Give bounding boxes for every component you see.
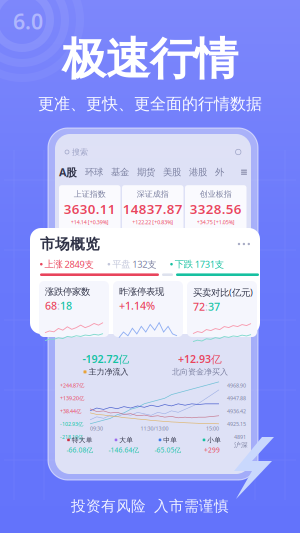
staticText: 11:30/13:00 (140, 425, 168, 432)
staticText: 创业板指 (200, 189, 232, 199)
staticText: +14.14 [+0.39%] (71, 219, 109, 226)
staticText: -218.10亿 (60, 433, 83, 440)
staticText: 37 (208, 299, 220, 314)
staticText: -65.05亿 (154, 445, 181, 454)
staticText: 深证成指 (137, 189, 169, 199)
staticText: 6.0 (13, 7, 43, 35)
staticText: 市场概览 (40, 235, 100, 253)
staticText: 4925.15 (227, 420, 246, 428)
staticText: 环球 (85, 166, 103, 178)
staticText: 14837.87 (123, 200, 183, 218)
staticText: 大单 (119, 436, 133, 444)
staticText: 1731支 (195, 258, 224, 270)
staticText: 涨跌停家数 (45, 286, 90, 297)
staticText: 4936.42 (227, 408, 246, 415)
staticText: 基金 (111, 166, 129, 178)
staticText: 68 (45, 298, 57, 313)
staticText: 09:30 (90, 425, 103, 432)
staticText: 期货 (137, 166, 155, 178)
staticText: +299 (204, 445, 220, 454)
staticText: 小单 (207, 436, 221, 444)
staticText: -66.08亿 (66, 445, 93, 454)
staticText: 2849支 (65, 258, 94, 270)
staticText: +34.75 [+1.05%] (197, 219, 235, 226)
staticText: 4947.88 (227, 395, 246, 402)
staticText: 72 (193, 299, 205, 314)
staticText: 买卖对比(亿元) (193, 286, 253, 298)
staticText: -146.64亿 (108, 445, 139, 454)
staticText: 极速行情 (62, 32, 238, 86)
staticText: +139.20亿 (60, 395, 84, 402)
staticText: +1.14% (119, 298, 155, 313)
staticText: 搜索 (72, 147, 88, 157)
staticText: -102.93亿 (60, 420, 83, 428)
staticText: 下跌 (175, 258, 193, 270)
staticText: : (57, 298, 60, 313)
staticText: 18 (60, 298, 72, 313)
staticText: 港股 (189, 166, 207, 178)
staticText: 外 (215, 166, 224, 178)
staticText: 昨涨停表现 (119, 286, 164, 297)
staticText: 特大单 (72, 436, 93, 444)
staticText: 上涨 (45, 258, 63, 270)
staticText: 4891 (234, 433, 246, 440)
staticText: : (205, 299, 208, 314)
staticText: 3630.11 (64, 200, 116, 218)
staticText: 15:00 (206, 425, 219, 432)
staticText: 4968.90 (227, 382, 246, 389)
staticText: +244.87亿 (60, 382, 84, 389)
staticText: 更准、更快、更全面的行情数据 (38, 94, 262, 114)
staticText: 平盘 (112, 258, 130, 270)
staticText: 北向资金净买入 (172, 367, 228, 377)
staticText: +122.22 [+0.83%] (132, 219, 173, 226)
staticText: 美股 (163, 166, 181, 178)
staticText: 132支 (132, 258, 156, 270)
staticText: A股 (59, 165, 77, 179)
staticText: +12.93亿 (178, 352, 222, 366)
staticText: 主力净流入 (88, 367, 128, 377)
staticText: +38.44亿 (60, 408, 81, 415)
staticText: 沪深 (234, 441, 248, 449)
staticText: 3328.56 (190, 200, 242, 218)
staticText: 上证指数 (74, 189, 106, 199)
staticText: 中单 (163, 436, 177, 444)
staticText: 投资有风险 入市需谨慎 (71, 497, 229, 515)
staticText: -192.72亿 (82, 352, 129, 366)
